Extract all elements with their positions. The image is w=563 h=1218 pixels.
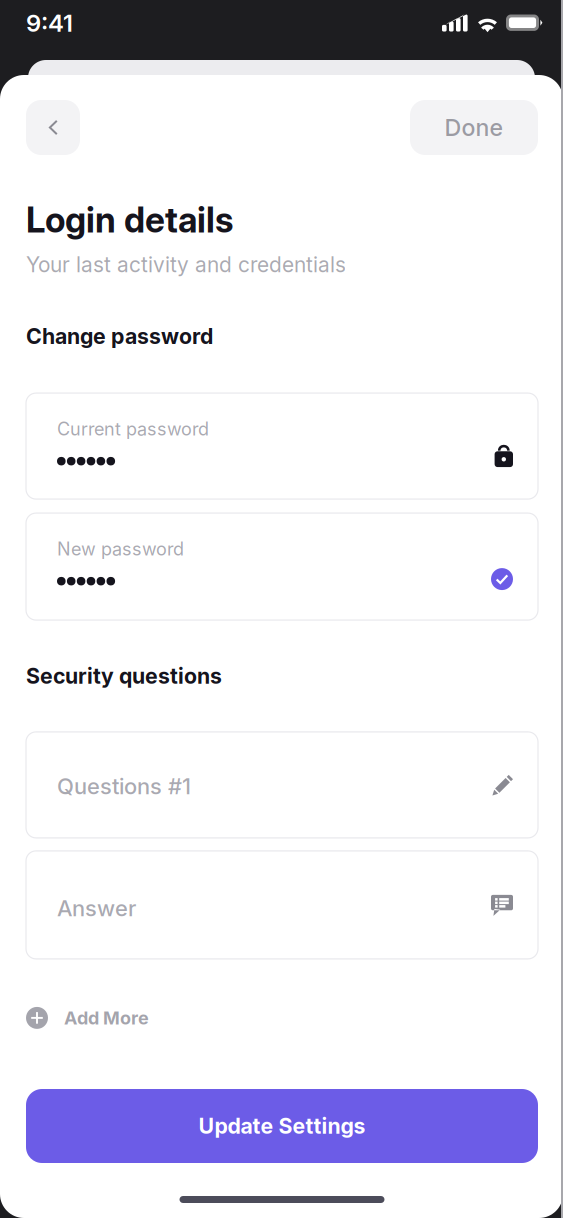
button[interactable]: Done <box>410 100 538 155</box>
staticText: Change password <box>26 323 213 349</box>
button[interactable]: Update Settings <box>26 1089 538 1163</box>
staticText: Current password <box>57 418 209 440</box>
button[interactable]: Questions #1 <box>26 732 538 838</box>
button[interactable]: Add More <box>26 1007 149 1029</box>
staticText: New password <box>57 538 184 560</box>
staticText: Questions #1 <box>57 773 191 799</box>
button[interactable]: Answer <box>26 851 538 959</box>
staticText: Security questions <box>26 663 222 689</box>
staticText: Login details <box>26 199 233 241</box>
button[interactable]: New password <box>26 513 538 620</box>
staticText: Your last activity and credentials <box>26 252 346 277</box>
button[interactable]: Back <box>26 100 80 155</box>
button[interactable]: Current password <box>26 393 538 499</box>
staticText: Update Settings <box>198 1113 365 1139</box>
staticText: Done <box>444 113 503 142</box>
staticText: Answer <box>57 895 136 921</box>
staticText: 9:41 <box>26 8 73 37</box>
staticText: Add More <box>64 1007 149 1029</box>
